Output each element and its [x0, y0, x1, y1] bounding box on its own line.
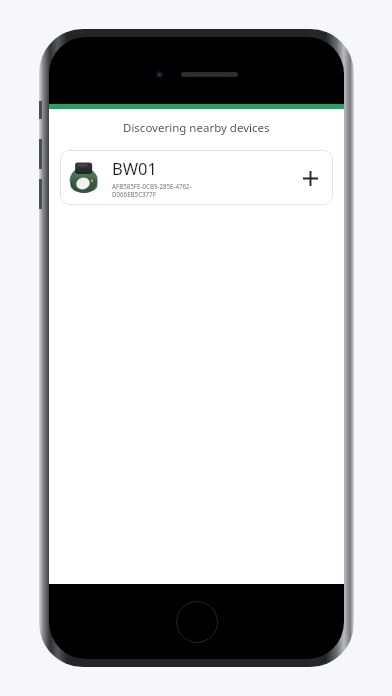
staticText: BW01 — [112, 157, 157, 179]
button[interactable]: BW01 — [60, 150, 333, 205]
button[interactable]: Add device — [294, 162, 326, 194]
staticText: AFB585FE-0CB9-285E-4762- — [112, 182, 192, 190]
staticText: D066EB5C377F — [112, 190, 156, 198]
staticText: Discovering nearby devices — [123, 120, 270, 136]
